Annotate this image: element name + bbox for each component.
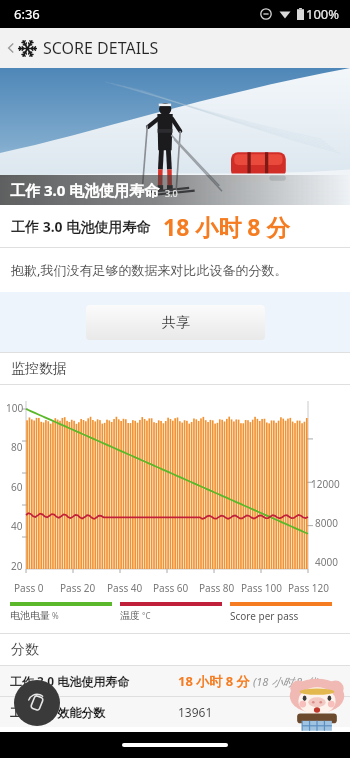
- staticText: 工作 3.0 电池使用寿命: [11, 217, 151, 236]
- staticText: 60: [11, 480, 23, 494]
- staticText: 温度: [120, 609, 140, 622]
- staticText: 100%: [306, 5, 340, 23]
- staticText: Pass 40: [107, 581, 143, 595]
- staticText: 18 小时 8 分: [178, 672, 250, 690]
- staticText: 电池电量: [10, 609, 50, 622]
- button[interactable]: 工作 3.0 电池使用寿命: [0, 666, 350, 696]
- staticText: Pass 60: [153, 581, 189, 595]
- staticText: 共享: [162, 314, 190, 332]
- staticText: Pass 100: [241, 581, 282, 595]
- staticText: Pass 0: [14, 581, 44, 595]
- button[interactable]: SCORE DETAILS: [0, 28, 350, 68]
- staticText: Pass 120: [288, 581, 329, 595]
- staticText: 12000: [311, 477, 340, 491]
- staticText: 工作 3.0 效能分数: [10, 704, 106, 720]
- staticText: 6:36: [14, 5, 40, 23]
- staticText: 20: [11, 559, 23, 573]
- staticText: 80: [11, 440, 23, 454]
- staticText: Pass 20: [60, 581, 96, 595]
- staticText: 18 小时 8 分: [163, 211, 290, 242]
- staticText: 抱歉,我们没有足够的数据来对比此设备的分数。: [11, 261, 288, 279]
- staticText: SCORE DETAILS: [43, 37, 159, 59]
- staticText: 8000: [315, 516, 338, 530]
- staticText: 3.0: [165, 187, 178, 199]
- staticText: Score per pass: [230, 609, 299, 623]
- staticText: 100: [6, 401, 24, 415]
- staticText: Pass 80: [199, 581, 235, 595]
- button[interactable]: Rotate orientation: [14, 680, 60, 726]
- staticText: 工作 3.0 电池使用寿命: [10, 673, 130, 689]
- staticText: %: [52, 610, 59, 621]
- staticText: 13961: [178, 704, 213, 720]
- staticText: 工作 3.0 电池使用寿命: [10, 180, 160, 200]
- staticText: 4000: [315, 555, 338, 569]
- button[interactable]: 工作 3.0 效能分数: [0, 697, 350, 727]
- staticText: 监控数据: [11, 360, 67, 378]
- button[interactable]: 共享: [86, 305, 265, 340]
- staticText: (18 小时 8 分): [253, 674, 320, 689]
- staticText: °C: [142, 610, 151, 621]
- staticText: 40: [11, 519, 23, 533]
- staticText: 分数: [11, 641, 39, 659]
